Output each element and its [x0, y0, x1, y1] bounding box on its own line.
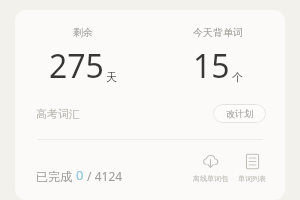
staticText: 已完成: [36, 168, 76, 184]
staticText: 275: [49, 44, 104, 88]
staticText: 个: [232, 70, 243, 84]
staticText: 改计划: [226, 108, 253, 119]
staticText: / 4124: [84, 168, 123, 184]
button[interactable]: Word list: [236, 150, 268, 185]
button[interactable]: 改计划: [213, 104, 266, 123]
staticText: 离线单词包: [193, 174, 228, 183]
staticText: 高考词汇: [36, 107, 80, 121]
button[interactable]: 已完成: [36, 152, 123, 184]
button[interactable]: Offline word pack: [191, 150, 230, 185]
staticText: 0: [76, 166, 84, 184]
staticText: 15: [193, 44, 230, 88]
staticText: 单词列表: [238, 174, 266, 183]
staticText: 剩余: [73, 26, 93, 39]
staticText: 天: [106, 70, 117, 84]
staticText: 今天背单词: [193, 26, 243, 39]
